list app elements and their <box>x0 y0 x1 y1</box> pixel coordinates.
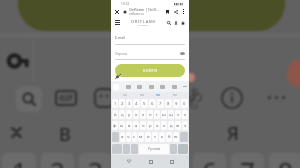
button[interactable]: Search <box>166 20 171 25</box>
button[interactable]: и <box>145 132 151 142</box>
button[interactable]: Share <box>173 9 178 14</box>
staticText: Русский <box>148 147 161 151</box>
button[interactable]: ч <box>126 132 131 142</box>
button[interactable]: 8 <box>165 99 172 108</box>
button[interactable]: ю <box>173 132 179 142</box>
button[interactable]: Home <box>147 158 154 165</box>
staticText: 8 <box>278 153 293 168</box>
button[interactable]: щ <box>168 110 174 119</box>
button[interactable]: Русский <box>139 144 169 154</box>
button[interactable]: э <box>182 121 188 130</box>
button[interactable] <box>170 144 177 154</box>
button[interactable]: х <box>182 110 188 119</box>
staticText: л <box>163 123 166 129</box>
button[interactable]: ш <box>161 110 167 119</box>
staticText: с <box>133 134 136 140</box>
button[interactable]: е <box>140 110 146 119</box>
button[interactable] <box>178 144 188 154</box>
staticText: ▮▮▮ ▮▮ <box>174 2 184 6</box>
button[interactable]: у <box>126 110 132 119</box>
button[interactable]: ф <box>112 121 118 130</box>
button[interactable] <box>112 144 122 154</box>
staticText: 5 <box>164 153 179 168</box>
button[interactable]: 7 <box>157 99 164 108</box>
staticText: ш <box>162 112 166 118</box>
button[interactable]: Recents <box>168 158 175 165</box>
staticText: E-mail <box>115 35 125 40</box>
staticText: 5 <box>143 101 146 107</box>
button[interactable]: Show password <box>180 51 185 56</box>
button[interactable]: ы <box>119 121 125 130</box>
staticText: б <box>168 134 171 140</box>
button[interactable]: 9 <box>173 99 180 108</box>
button[interactable]: р <box>147 121 153 130</box>
staticText: 4 <box>135 101 138 107</box>
button[interactable]: в <box>126 121 132 130</box>
staticText: ы <box>120 123 124 129</box>
staticText: п <box>142 123 145 129</box>
staticText: ф <box>113 123 117 129</box>
button[interactable] <box>123 144 130 154</box>
button[interactable]: Menu <box>115 19 122 26</box>
button[interactable]: д <box>168 121 174 130</box>
staticText: р <box>149 123 152 129</box>
button[interactable]: м <box>138 132 144 142</box>
staticText: Oriflame | Orifl… <box>129 7 159 12</box>
button[interactable]: Back <box>125 158 132 165</box>
button[interactable]: 2 <box>119 99 125 108</box>
staticText: 3 <box>128 101 131 107</box>
staticText: е <box>142 112 145 118</box>
button[interactable]: 4 <box>133 99 140 108</box>
button[interactable]: с <box>132 132 137 142</box>
staticText: 6 <box>151 101 154 107</box>
staticText: GIF <box>59 92 74 104</box>
button[interactable]: я <box>120 132 125 142</box>
staticText: д <box>170 123 173 129</box>
button[interactable]: 5 <box>141 99 148 108</box>
button[interactable]: г <box>154 110 160 119</box>
staticText: ю <box>174 134 178 140</box>
staticText: 9 <box>175 101 178 107</box>
button[interactable] <box>180 132 188 142</box>
button[interactable]: н <box>147 110 153 119</box>
button[interactable]: Clipboard <box>113 84 119 90</box>
staticText: в <box>128 123 131 129</box>
button[interactable]: з <box>175 110 181 119</box>
staticText: э <box>184 123 187 129</box>
button[interactable]: Cart <box>180 20 185 25</box>
button[interactable]: а <box>133 121 139 130</box>
button[interactable]: Account <box>173 20 178 25</box>
staticText: ч <box>127 134 130 140</box>
button[interactable]: ВОЙТИ <box>115 64 185 77</box>
button[interactable]: б <box>166 132 172 142</box>
button[interactable]: ц <box>119 110 125 119</box>
button[interactable]: More options <box>181 9 186 14</box>
button[interactable]: Close <box>114 9 120 15</box>
button[interactable]: п <box>140 121 146 130</box>
staticText: ц <box>121 112 124 118</box>
staticText: 8 <box>167 101 170 107</box>
button[interactable]: т <box>152 132 158 142</box>
button[interactable]: й <box>112 110 118 119</box>
staticText: а <box>135 123 138 129</box>
button[interactable]: ь <box>159 132 165 142</box>
staticText: т <box>154 134 156 140</box>
staticText: 4 <box>126 153 141 168</box>
button[interactable] <box>112 132 119 142</box>
button[interactable]: 1 <box>112 99 118 108</box>
staticText: 2 <box>121 101 124 107</box>
button[interactable]: л <box>161 121 167 130</box>
staticText: н <box>149 112 152 118</box>
button[interactable]: о <box>154 121 160 130</box>
staticText: oriflame.ru <box>129 12 144 16</box>
button[interactable]: 6 <box>149 99 156 108</box>
staticText: あ <box>188 85 204 104</box>
button[interactable]: к <box>133 110 139 119</box>
button[interactable]: ж <box>175 121 181 130</box>
button[interactable]: 0 <box>181 99 188 108</box>
button[interactable] <box>131 144 138 154</box>
staticText: 7 <box>240 153 255 168</box>
staticText: ВОЙТИ <box>143 68 158 73</box>
button[interactable]: Bookmark <box>165 9 170 14</box>
button[interactable]: 3 <box>126 99 132 108</box>
